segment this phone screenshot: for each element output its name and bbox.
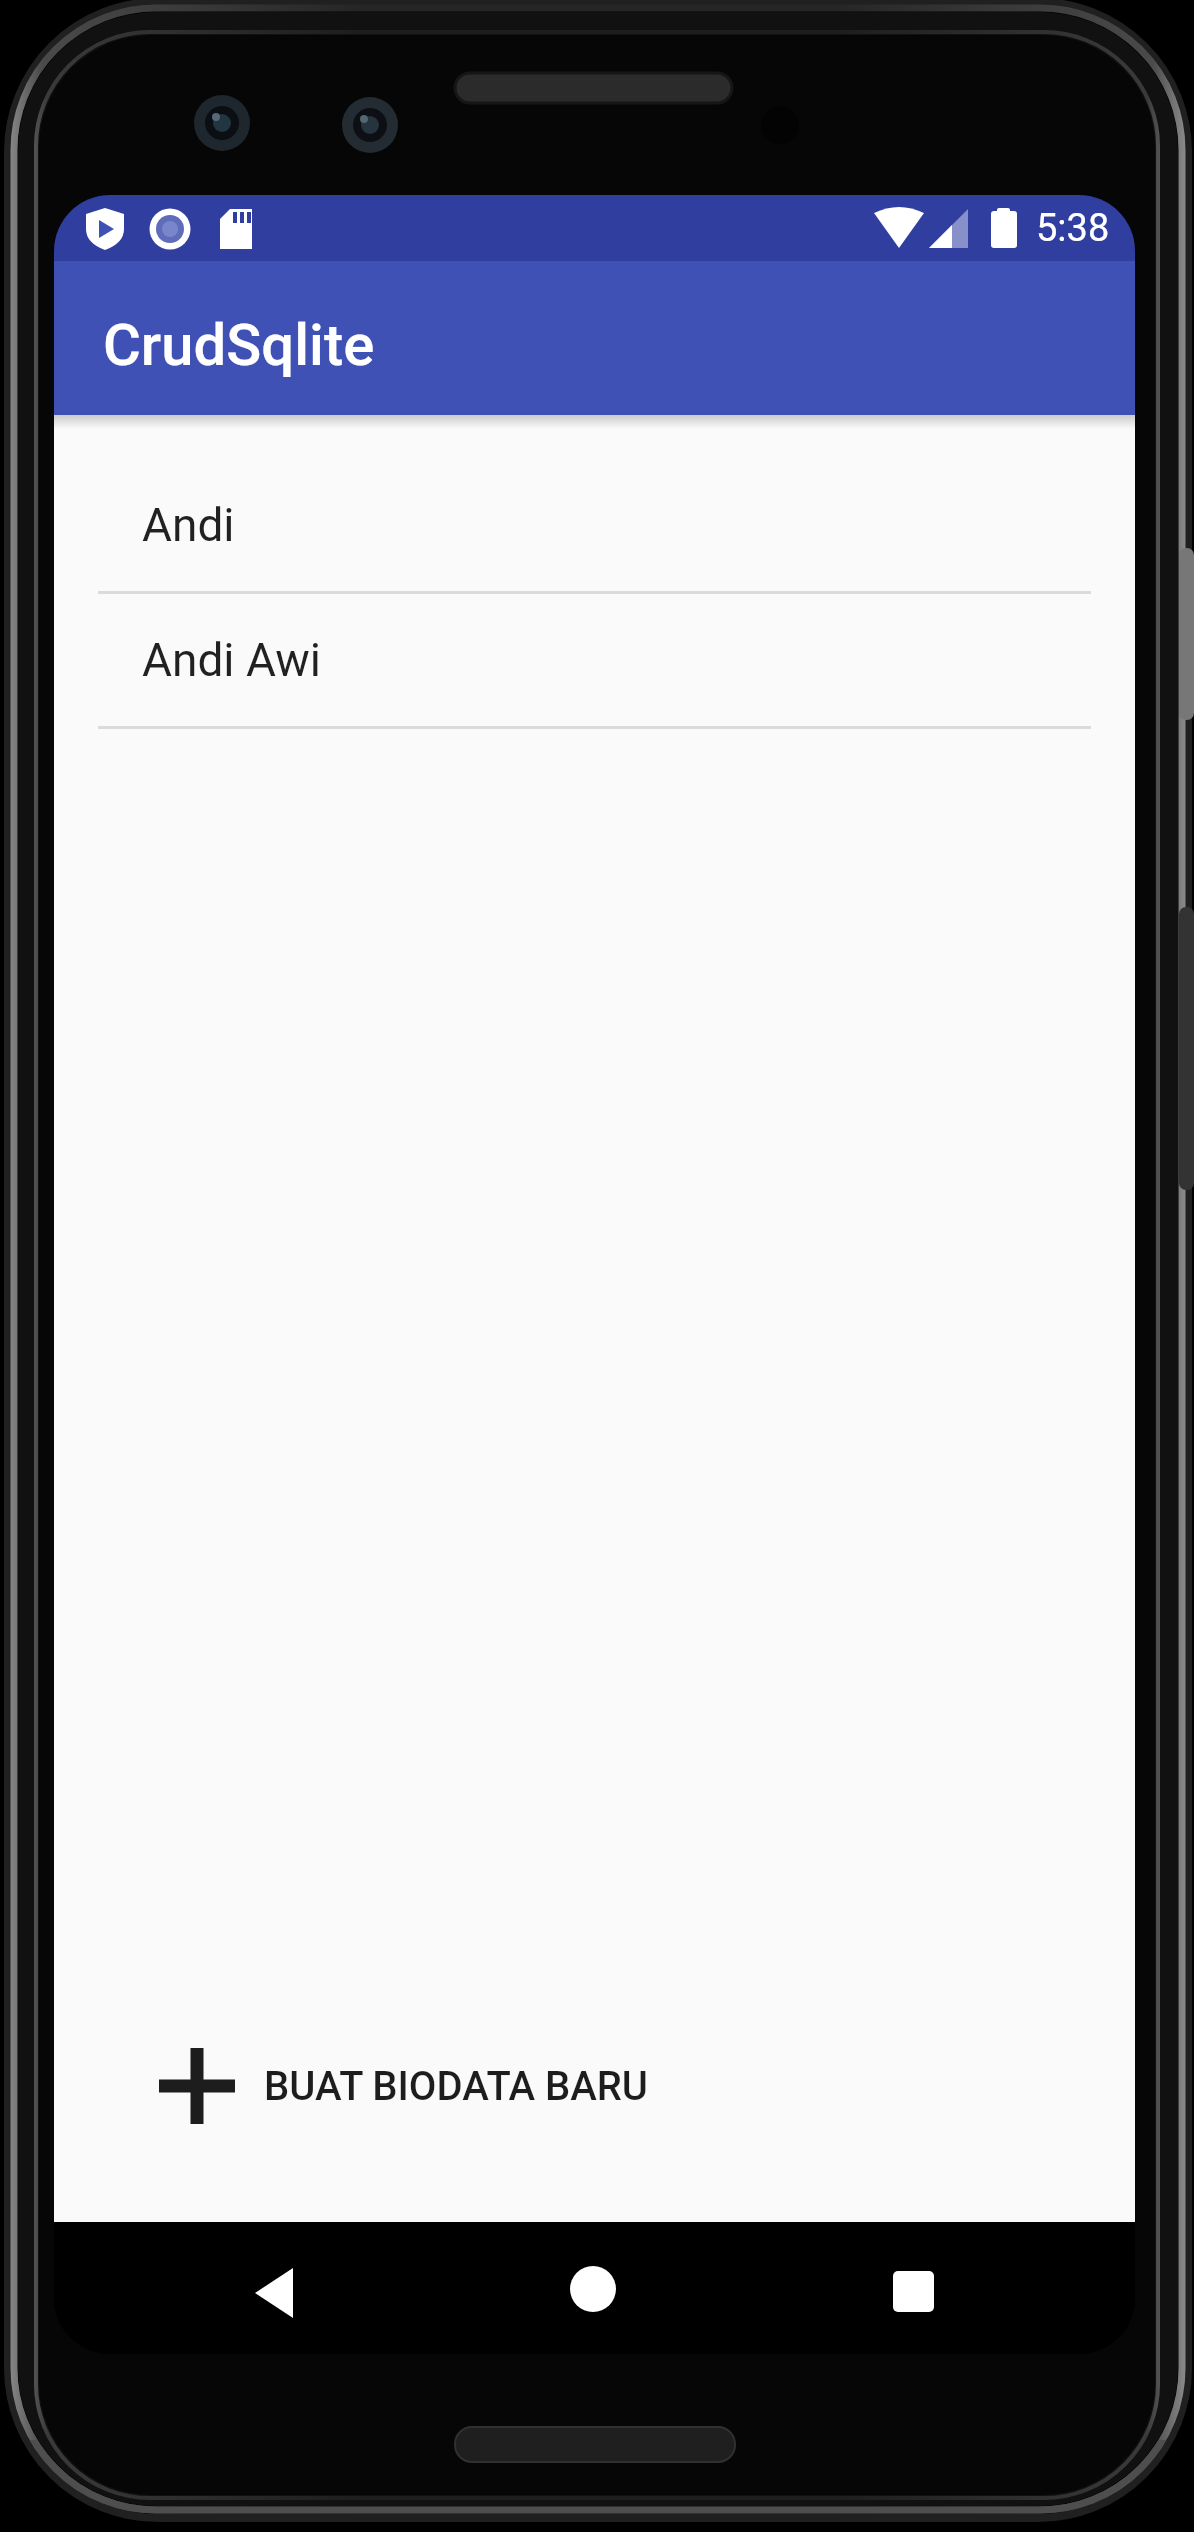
staticText: Andi: [142, 498, 235, 552]
staticText: BUAT BIODATA BARU: [264, 2063, 648, 2110]
staticText: 5:38: [1036, 206, 1110, 251]
button[interactable]: Andi: [98, 459, 1091, 591]
button[interactable]: [415, 2222, 775, 2354]
staticText: CrudSqlite: [103, 311, 375, 379]
staticText: Andi Awi: [142, 633, 321, 687]
button[interactable]: [775, 2222, 1135, 2354]
button[interactable]: Andi Awi: [98, 594, 1091, 726]
button[interactable]: BUAT BIODATA BARU: [159, 2020, 648, 2152]
button[interactable]: [54, 2222, 415, 2354]
